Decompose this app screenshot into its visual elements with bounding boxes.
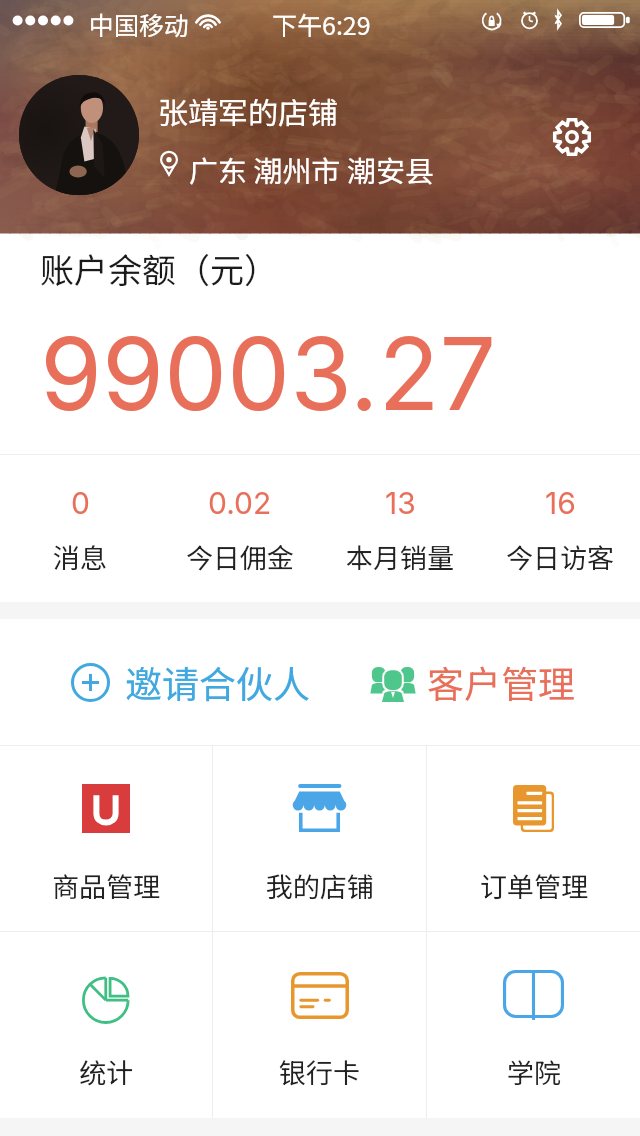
staticText: 我的店铺 [266,866,374,905]
staticText: 广东 潮州市 潮安县 [189,148,434,190]
button[interactable]: 订单管理 [427,746,640,931]
button[interactable]: 客户管理 [371,645,575,719]
staticText: 今日访客 [506,537,614,576]
button[interactable]: 13 [320,455,480,576]
staticText: 张靖军的店铺 [158,89,338,132]
staticText: 0 [71,485,90,521]
staticText: 99003.27 [40,313,497,434]
staticText: 商品管理 [52,866,160,905]
staticText: 客户管理 [427,655,575,709]
staticText: 0.02 [208,485,272,521]
staticText: 消息 [53,537,107,576]
button[interactable]: 0.02 [160,455,320,576]
staticText: 订单管理 [480,866,588,905]
staticText: 银行卡 [279,1052,360,1091]
staticText: 中国移动 [89,6,190,42]
staticText: 邀请合伙人 [125,655,310,709]
button[interactable]: 银行卡 [213,932,426,1118]
button[interactable]: 我的店铺 [213,746,426,931]
staticText: 13 [385,485,416,521]
button[interactable]: 商品管理 [0,746,212,931]
staticText: 今日佣金 [186,537,294,576]
button[interactable]: 统计 [0,932,212,1118]
staticText: 统计 [79,1052,133,1091]
button[interactable]: Settings [545,110,599,164]
button[interactable]: 学院 [427,932,640,1118]
button[interactable]: 邀请合伙人 [71,645,310,719]
button[interactable]: 16 [480,455,640,576]
staticText: 16 [545,485,576,521]
staticText: 账户余额（元） [40,244,278,293]
staticText: 下午6:29 [272,6,371,42]
staticText: 学院 [507,1052,561,1091]
staticText: 本月销量 [346,537,454,576]
button[interactable]: Profile photo [19,75,139,195]
button[interactable]: 0 [0,455,160,576]
